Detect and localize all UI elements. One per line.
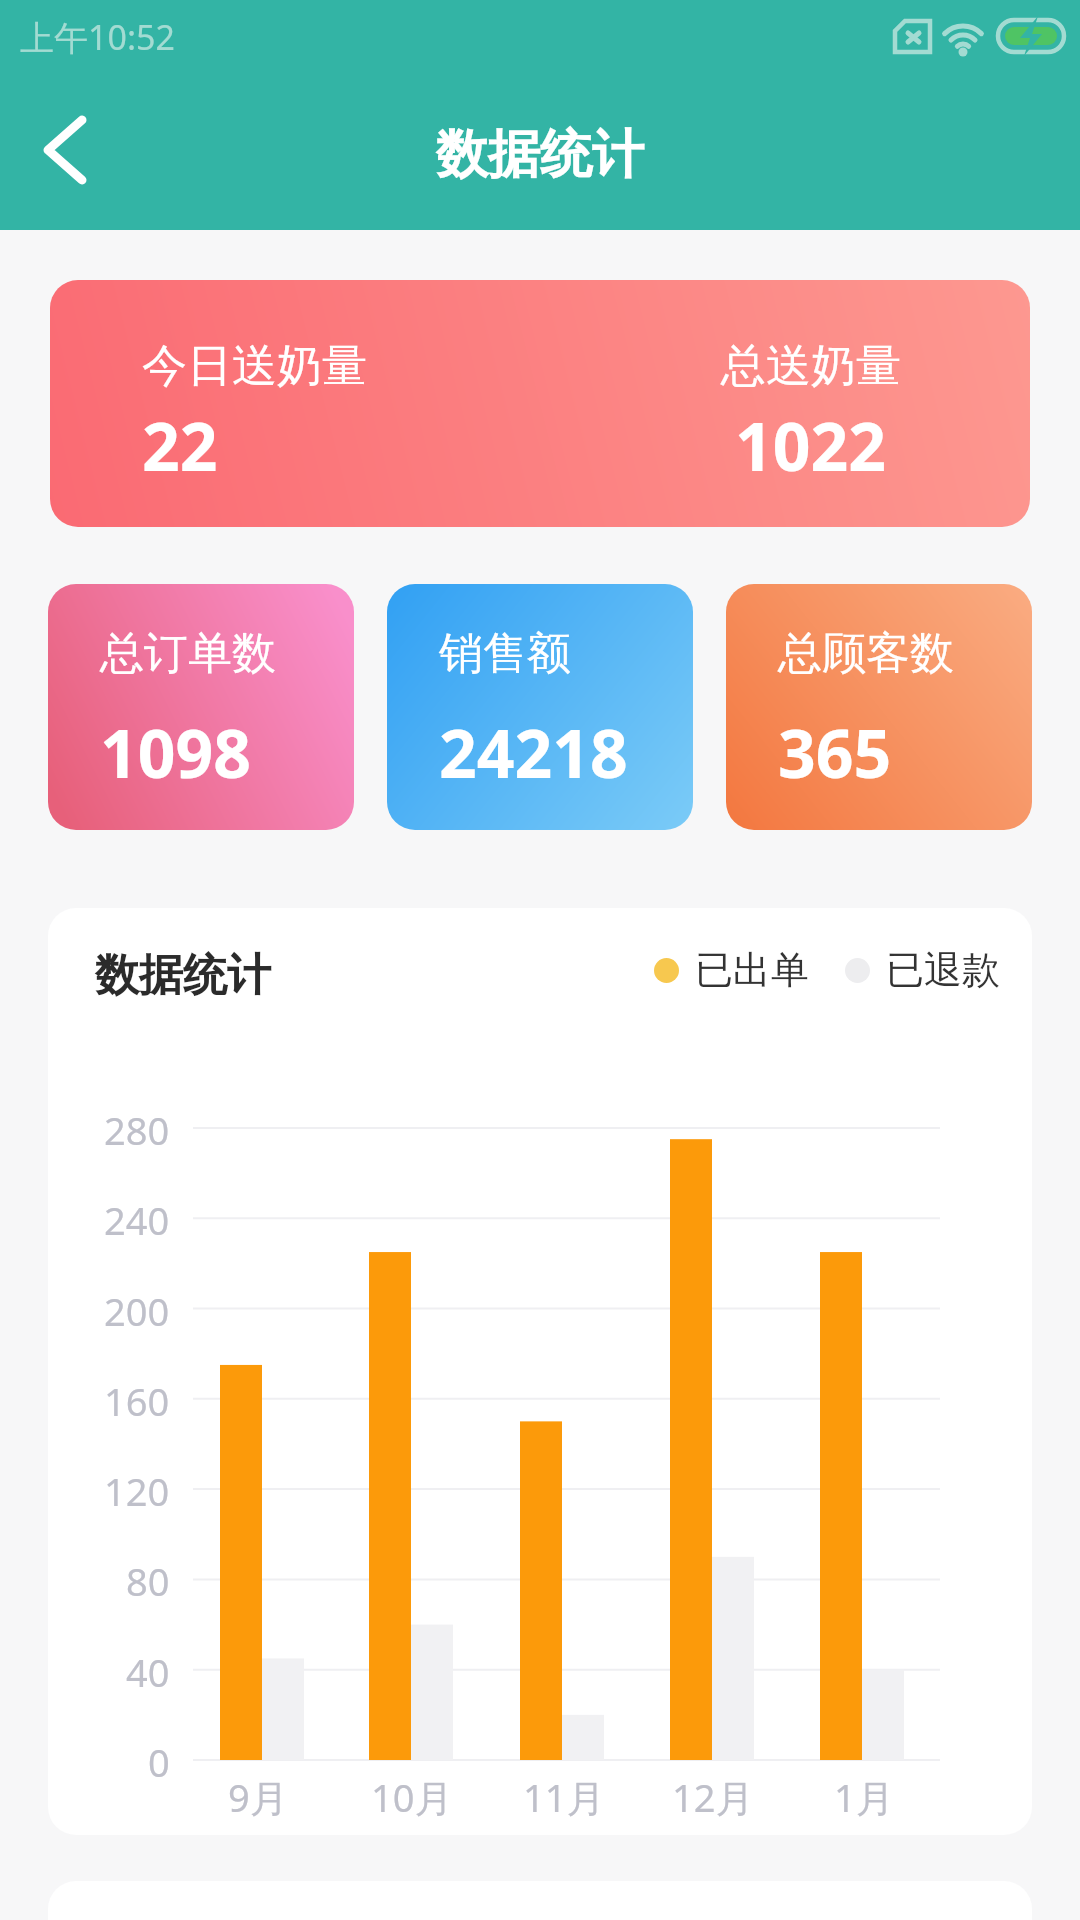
staticText: 今日送奶量 <box>142 338 367 395</box>
staticText: 240 <box>104 1194 170 1242</box>
button[interactable]: 总顾客数 <box>726 584 1032 830</box>
button[interactable]: 总订单数 <box>48 584 354 830</box>
staticText: 12月 <box>672 1771 754 1819</box>
staticText: 40 <box>126 1646 170 1694</box>
staticText: 已退款 <box>886 946 1000 994</box>
staticText: 9月 <box>228 1771 288 1819</box>
staticText: 80 <box>126 1555 170 1603</box>
staticText: 200 <box>104 1285 170 1333</box>
staticText: 销售额 <box>439 626 571 681</box>
button[interactable]: 今日送奶量 <box>50 280 1030 527</box>
staticText: 1022 <box>735 400 887 490</box>
staticText: 22 <box>142 400 218 490</box>
staticText: 总顾客数 <box>778 626 954 681</box>
button[interactable] <box>20 110 110 190</box>
staticText: 120 <box>104 1465 170 1513</box>
staticText: 数据统计 <box>95 948 271 1003</box>
staticText: 160 <box>104 1375 170 1423</box>
staticText: 11月 <box>523 1771 605 1819</box>
staticText: 数据统计 <box>436 122 644 188</box>
staticText: 上午10:52 <box>20 14 175 60</box>
button[interactable]: 销售额 <box>387 584 693 830</box>
staticText: 365 <box>778 707 892 797</box>
staticText: 10月 <box>371 1771 453 1819</box>
staticText: 0 <box>148 1736 170 1784</box>
staticText: 1月 <box>834 1771 894 1819</box>
staticText: 24218 <box>439 707 628 797</box>
staticText: 280 <box>104 1104 170 1152</box>
staticText: 总订单数 <box>100 626 276 681</box>
staticText: 1098 <box>100 707 252 797</box>
staticText: 总送奶量 <box>721 338 901 395</box>
staticText: 已出单 <box>695 946 809 994</box>
